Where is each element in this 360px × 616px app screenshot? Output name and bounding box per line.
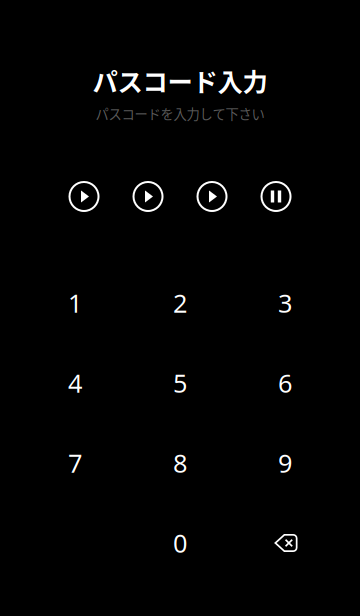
button[interactable]: 1 xyxy=(22,263,127,343)
staticText: 0 xyxy=(173,526,187,560)
staticText: 8 xyxy=(173,446,187,480)
button[interactable]: 5 xyxy=(127,343,232,423)
button[interactable]: 6 xyxy=(232,343,337,423)
button[interactable]: 7 xyxy=(22,423,127,503)
button[interactable]: 2 xyxy=(127,263,232,343)
staticText: 1 xyxy=(68,286,82,320)
button[interactable]: 3 xyxy=(232,263,337,343)
staticText: 9 xyxy=(278,446,292,480)
staticText: 4 xyxy=(68,366,82,400)
staticText: 6 xyxy=(278,366,292,400)
staticText: 2 xyxy=(173,286,187,320)
button[interactable]: 4 xyxy=(22,343,127,423)
button[interactable]: 8 xyxy=(127,423,232,503)
staticText: 5 xyxy=(173,366,187,400)
staticText: パスコードを入力して下さい xyxy=(95,104,264,123)
button[interactable]: 0 xyxy=(127,503,232,583)
staticText: 7 xyxy=(68,446,82,480)
button[interactable]: Delete xyxy=(232,503,337,583)
button[interactable]: 9 xyxy=(232,423,337,503)
staticText: パスコード入力 xyxy=(92,62,267,99)
staticText: 3 xyxy=(278,286,292,320)
